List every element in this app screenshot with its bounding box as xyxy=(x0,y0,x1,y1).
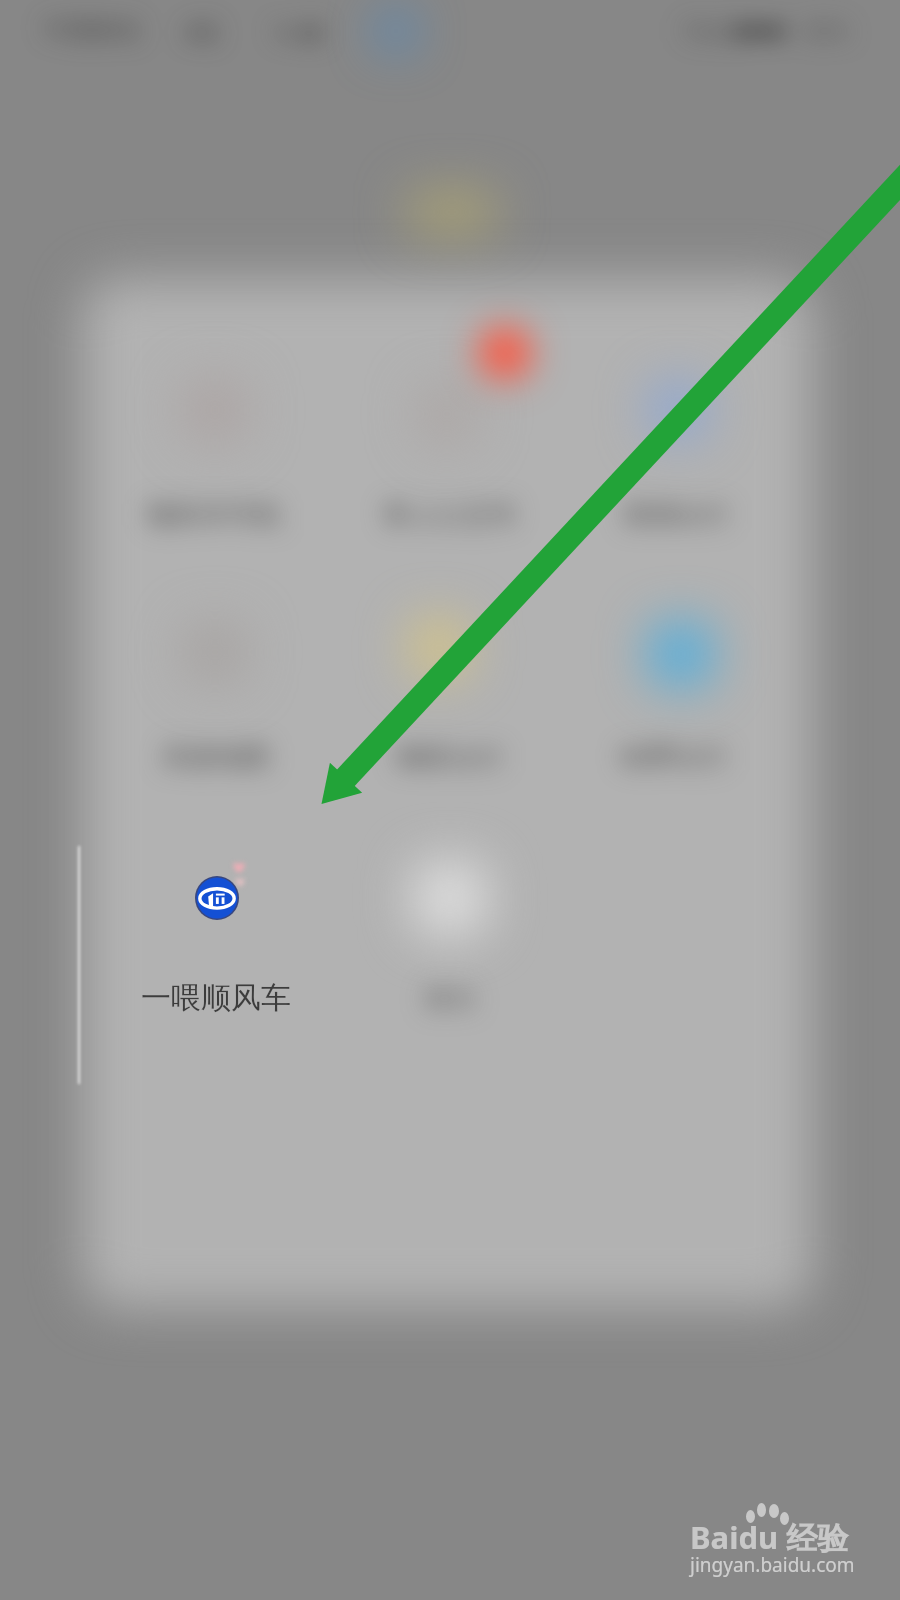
staticText: 微信 xyxy=(424,982,476,1015)
button[interactable]: 顺风车司机 xyxy=(125,368,305,552)
button[interactable]: 哈啰出行 xyxy=(588,610,768,794)
staticText: 顺风车司机 xyxy=(147,498,282,532)
staticText: 一喂顺风车 xyxy=(141,979,291,1017)
button[interactable]: 掌上公交车 xyxy=(360,368,540,552)
staticText: 高德地图 xyxy=(162,740,270,774)
staticText: 滴滴出行 xyxy=(622,498,730,532)
button[interactable]: 高德地图 xyxy=(125,610,305,794)
staticText: jingyan.baidu.com xyxy=(690,1552,855,1578)
button[interactable]: 一喂顺风车 app icon xyxy=(195,876,239,920)
staticText: Baidu 经验 xyxy=(690,1516,849,1558)
staticText: 15:42 xyxy=(681,14,743,47)
staticText: ▬▬ xyxy=(737,14,787,44)
staticText: 掌上公交车 xyxy=(383,498,518,532)
button[interactable]: 微信 xyxy=(360,854,540,1038)
staticText: 嘀嗒出行 xyxy=(396,741,504,775)
button[interactable]: 滴滴出行 xyxy=(588,368,768,552)
staticText: 哈啰出行 xyxy=(620,740,728,774)
button[interactable]: 嗒嗒出行 xyxy=(360,610,540,794)
